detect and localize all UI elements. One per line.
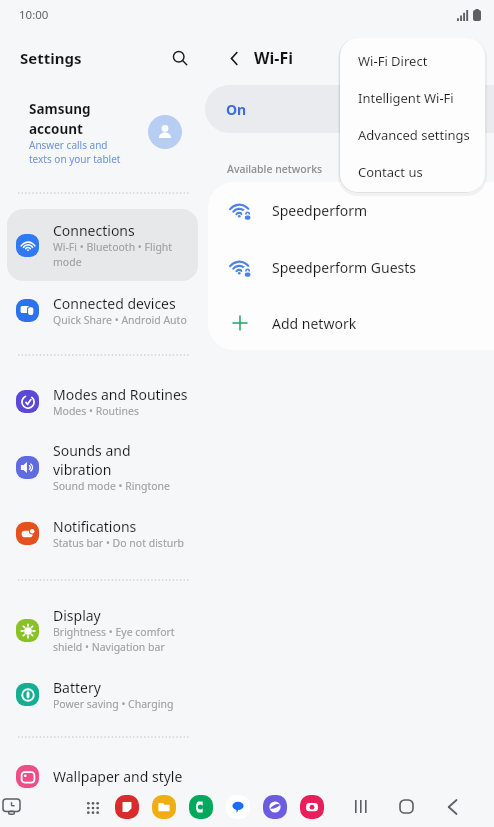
staticText: 10:00 xyxy=(19,7,49,23)
button[interactable] xyxy=(7,209,198,281)
button[interactable]: Apps xyxy=(82,797,103,818)
staticText: Add network xyxy=(272,314,357,333)
button[interactable]: Modes and Routines xyxy=(7,371,198,431)
button[interactable]: Wallpaper and style xyxy=(7,750,198,802)
button[interactable]: App 5 xyxy=(263,795,287,819)
staticText: Speedperform xyxy=(272,201,368,220)
button[interactable]: Samsung account xyxy=(148,115,182,149)
staticText: Wi-Fi xyxy=(254,47,293,69)
staticText: Brightness • Eye comfort shield • Naviga… xyxy=(53,625,190,654)
staticText: Sound mode • Ringtone xyxy=(53,479,170,493)
button[interactable]: Advanced settings xyxy=(340,116,485,153)
button[interactable]: Back xyxy=(442,796,463,817)
button[interactable]: Intelligent Wi-Fi xyxy=(340,79,485,116)
button[interactable]: Notifications xyxy=(7,503,198,563)
staticText: Modes and Routines xyxy=(53,385,188,404)
button[interactable]: Wi-Fi Direct xyxy=(340,42,485,79)
button[interactable]: On xyxy=(205,85,494,133)
button[interactable]: Connected devices xyxy=(7,280,198,340)
button[interactable]: App 3 xyxy=(189,795,213,819)
button[interactable]: Battery xyxy=(7,664,198,724)
button[interactable]: Sounds and vibration xyxy=(7,431,198,503)
staticText: Connections xyxy=(53,221,135,240)
staticText: Contact us xyxy=(358,163,423,181)
staticText: Modes • Routines xyxy=(53,404,140,418)
button[interactable]: App 2 xyxy=(152,795,176,819)
staticText: Wallpaper and style xyxy=(53,767,183,786)
button[interactable]: Home xyxy=(396,796,417,817)
staticText: Notifications xyxy=(53,517,137,536)
staticText: Available networks xyxy=(227,162,323,176)
staticText: Samsung account xyxy=(29,100,125,138)
button[interactable]: App 1 xyxy=(115,795,139,819)
button[interactable]: Task switcher xyxy=(1,796,22,817)
staticText: Wi-Fi Direct xyxy=(358,52,428,70)
staticText: Quick Share • Android Auto xyxy=(53,313,187,327)
staticText: Speedperform Guests xyxy=(272,258,416,277)
button[interactable]: App 4 xyxy=(226,795,250,819)
staticText: Answer calls and texts on your tablet xyxy=(29,138,125,166)
staticText: Status bar • Do not disturb xyxy=(53,536,184,550)
button[interactable]: Speedperform xyxy=(208,182,494,239)
staticText: Power saving • Charging xyxy=(53,697,174,711)
staticText: Wi-Fi • Bluetooth • Flight mode xyxy=(53,240,190,269)
staticText: Sounds and vibration xyxy=(53,441,190,479)
button[interactable]: Connections xyxy=(7,209,198,281)
staticText: Intelligent Wi-Fi xyxy=(358,89,454,107)
staticText: On xyxy=(226,100,247,119)
staticText: Settings xyxy=(20,48,82,68)
button[interactable]: Speedperform Guests xyxy=(208,239,494,296)
button[interactable]: Display xyxy=(7,594,198,666)
staticText: Battery xyxy=(53,678,101,697)
staticText: Connected devices xyxy=(53,294,176,313)
button[interactable]: Recent apps xyxy=(350,796,371,817)
button[interactable]: App 6 xyxy=(300,795,324,819)
button[interactable]: Contact us xyxy=(340,153,485,190)
button[interactable]: Add network xyxy=(208,296,494,350)
staticText: Advanced settings xyxy=(358,126,470,144)
button[interactable]: Back xyxy=(219,43,249,73)
staticText: Display xyxy=(53,606,101,625)
button[interactable]: Search xyxy=(165,43,195,73)
